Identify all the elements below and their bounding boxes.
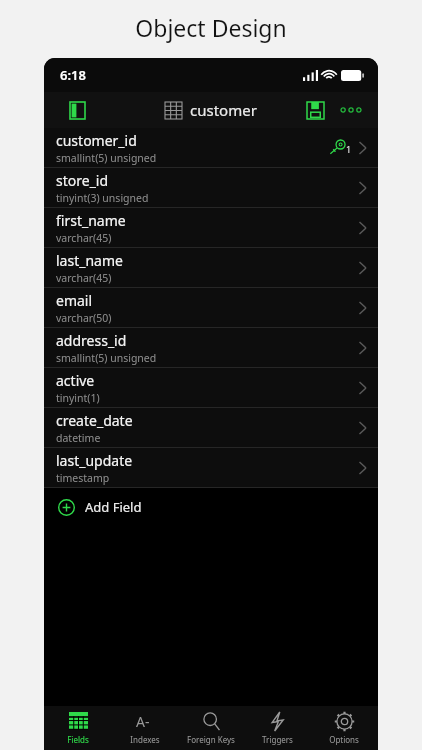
staticText: varchar(45): [56, 271, 112, 285]
staticText: customer: [190, 100, 257, 120]
staticText: last_update: [56, 451, 133, 470]
staticText: Triggers: [262, 734, 293, 745]
staticText: store_id: [56, 171, 109, 190]
staticText: active: [56, 371, 95, 390]
staticText: smallint(5) unsigned: [56, 351, 157, 365]
staticText: 6:18: [60, 66, 86, 84]
button[interactable]: Options: [312, 706, 376, 750]
button[interactable]: store_id: [44, 168, 378, 208]
button[interactable]: customer: [165, 100, 257, 120]
staticText: varchar(45): [56, 231, 112, 245]
button[interactable]: email: [44, 288, 378, 328]
staticText: A-Z: [136, 712, 155, 731]
button[interactable]: Add Field: [58, 488, 378, 526]
staticText: address_id: [56, 331, 127, 350]
staticText: customer_id: [56, 131, 137, 150]
button[interactable]: last_name: [44, 248, 378, 288]
staticText: Add Field: [85, 498, 142, 516]
staticText: Fields: [67, 734, 89, 745]
staticText: first_name: [56, 211, 126, 230]
staticText: smallint(5) unsigned: [56, 151, 157, 165]
staticText: varchar(50): [56, 311, 112, 325]
staticText: tinyint(3) unsigned: [56, 191, 149, 205]
button[interactable]: Save: [302, 97, 328, 123]
button[interactable]: address_id: [44, 328, 378, 368]
button[interactable]: active: [44, 368, 378, 408]
button[interactable]: Fields: [46, 706, 110, 750]
button[interactable]: create_date: [44, 408, 378, 448]
staticText: datetime: [56, 431, 101, 445]
staticText: Options: [329, 734, 359, 745]
staticText: last_name: [56, 251, 123, 270]
staticText: Indexes: [130, 734, 160, 745]
button[interactable]: A-Z: [113, 706, 177, 750]
staticText: 1: [346, 143, 352, 155]
button[interactable]: first_name: [44, 208, 378, 248]
staticText: timestamp: [56, 471, 110, 485]
button[interactable]: Toggle sidebar: [66, 99, 88, 121]
staticText: email: [56, 291, 93, 310]
button[interactable]: More options: [338, 97, 364, 123]
staticText: Object Design: [135, 12, 287, 43]
staticText: tinyint(1): [56, 391, 100, 405]
staticText: Foreign Keys: [187, 734, 235, 745]
button[interactable]: Foreign Keys: [179, 706, 243, 750]
button[interactable]: Triggers: [245, 706, 309, 750]
button[interactable]: last_update: [44, 448, 378, 488]
button[interactable]: customer_id: [44, 128, 378, 168]
staticText: create_date: [56, 411, 133, 430]
